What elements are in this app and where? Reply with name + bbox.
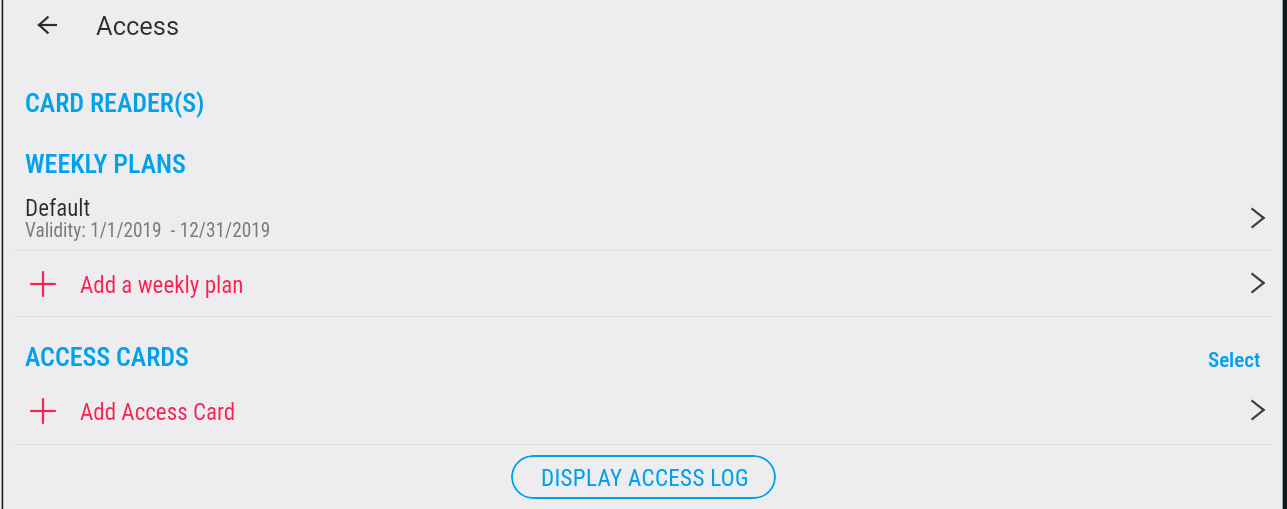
staticText: Select xyxy=(1208,348,1261,373)
staticText: WEEKLY PLANS xyxy=(25,149,186,179)
staticText: Add a weekly plan xyxy=(80,272,244,299)
staticText: Default xyxy=(25,195,91,222)
button[interactable]: Select xyxy=(1190,340,1275,376)
button[interactable]: CARD READER(S) xyxy=(0,86,1287,120)
staticText: Add Access Card xyxy=(80,399,236,426)
staticText: Access xyxy=(96,11,180,41)
button[interactable]: Add Access Card xyxy=(0,381,1287,443)
staticText: ACCESS CARDS xyxy=(25,342,189,372)
button[interactable]: Default xyxy=(0,190,1287,249)
staticText: Validity: 1/1/2019 - 12/31/2019 xyxy=(25,219,271,242)
button[interactable]: Back xyxy=(26,0,76,50)
staticText: CARD READER(S) xyxy=(25,88,205,118)
button[interactable]: Add a weekly plan xyxy=(0,250,1287,315)
button[interactable]: DISPLAY ACCESS LOG xyxy=(511,455,776,499)
staticText: DISPLAY ACCESS LOG xyxy=(541,465,749,492)
